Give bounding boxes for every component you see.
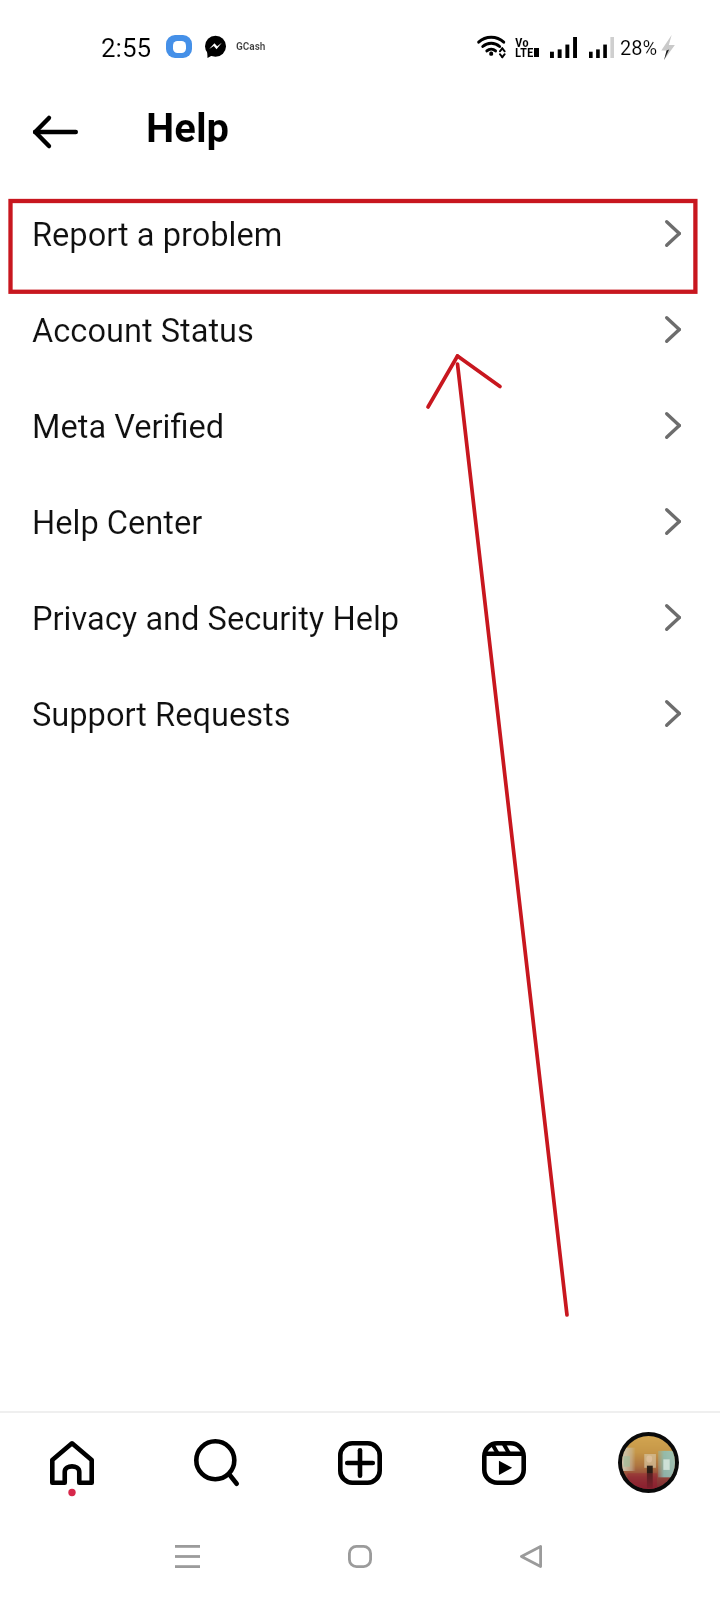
button[interactable]: Home [320,1516,400,1596]
staticText: LTE [515,45,534,60]
button[interactable]: Help Center [0,475,720,571]
button[interactable]: Report a problem [0,187,720,283]
staticText: 2:55 [101,33,152,63]
button[interactable]: Back [14,96,94,176]
staticText: Report a problem [32,216,283,254]
staticText: Vo [515,35,529,50]
button[interactable]: Privacy and Security Help [0,571,720,667]
button[interactable]: Create [288,1413,432,1512]
button[interactable]: Search [144,1413,288,1512]
staticText: Privacy and Security Help [32,600,400,638]
staticText: GCash [236,41,266,53]
staticText: Meta Verified [32,408,225,446]
staticText: Help Center [32,504,203,542]
button[interactable]: Account Status [0,283,720,379]
button[interactable]: Recent apps [147,1516,227,1596]
staticText: 28% [620,36,658,59]
staticText: Account Status [32,312,254,350]
button[interactable]: Meta Verified [0,379,720,475]
button[interactable]: Back [491,1516,571,1596]
staticText: Support Requests [32,696,291,734]
button[interactable]: Support Requests [0,667,720,763]
button[interactable]: Reels [432,1413,576,1512]
button[interactable]: Home [0,1413,144,1512]
button[interactable]: Profile [576,1413,720,1512]
staticText: Help [146,105,230,152]
